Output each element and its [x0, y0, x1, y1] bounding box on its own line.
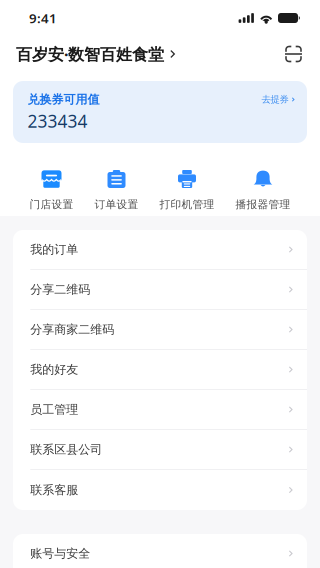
- staticText: 联系客服: [30, 483, 78, 497]
- button[interactable]: 分享商家二维码: [13, 310, 307, 350]
- staticText: 播报器管理: [235, 198, 290, 211]
- staticText: 订单设置: [94, 198, 138, 211]
- staticText: 233434: [27, 109, 87, 132]
- staticText: 门店设置: [29, 198, 73, 211]
- button[interactable]: 扫一扫: [280, 40, 307, 67]
- button[interactable]: 订单设置: [94, 170, 138, 210]
- button[interactable]: 联系区县公司: [13, 430, 307, 470]
- button[interactable]: 播报器管理: [235, 170, 290, 210]
- staticText: 百岁安·数智百姓食堂: [16, 43, 164, 65]
- staticText: 我的好友: [30, 362, 78, 377]
- button[interactable]: 我的好友: [13, 350, 307, 390]
- staticText: 我的订单: [30, 242, 78, 257]
- staticText: 账号与安全: [30, 546, 90, 561]
- button[interactable]: 分享二维码: [13, 270, 307, 310]
- button[interactable]: 打印机管理: [159, 170, 214, 210]
- button[interactable]: 我的订单: [13, 230, 307, 270]
- staticText: 联系区县公司: [30, 442, 102, 457]
- staticText: 打印机管理: [159, 198, 214, 211]
- staticText: 去提券: [261, 94, 288, 105]
- button[interactable]: 百岁安·数智百姓食堂: [16, 38, 175, 70]
- staticText: 兑换券可用值: [27, 92, 99, 107]
- button[interactable]: 门店设置: [29, 170, 73, 210]
- button[interactable]: 联系客服: [13, 470, 307, 510]
- button[interactable]: 去提券: [261, 94, 295, 105]
- button[interactable]: 员工管理: [13, 390, 307, 430]
- button[interactable]: 账号与安全: [13, 534, 307, 568]
- staticText: 分享二维码: [30, 282, 90, 297]
- staticText: 9:41: [29, 9, 57, 27]
- staticText: 分享商家二维码: [30, 322, 114, 337]
- staticText: 员工管理: [30, 402, 78, 417]
